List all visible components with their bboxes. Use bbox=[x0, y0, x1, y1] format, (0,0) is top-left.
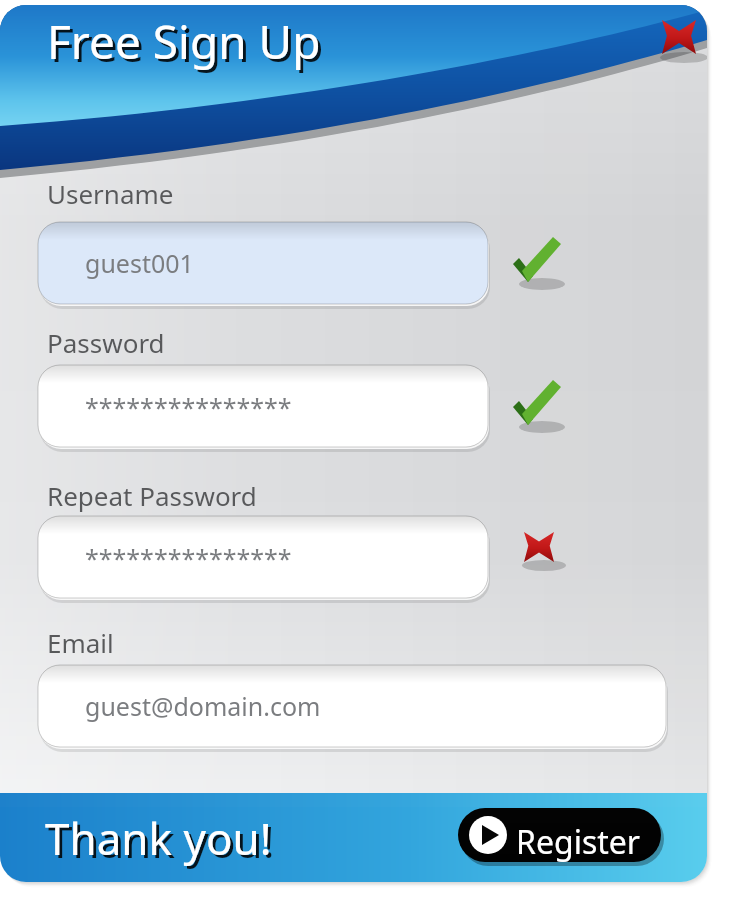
staticText: *************** bbox=[85, 541, 292, 575]
staticText: guest@domain.com bbox=[85, 689, 321, 723]
button[interactable] bbox=[38, 222, 488, 304]
staticText: Register bbox=[516, 820, 641, 864]
staticText: Free Sign Up bbox=[50, 13, 324, 76]
button[interactable] bbox=[38, 516, 488, 598]
staticText: Email bbox=[47, 625, 114, 660]
staticText: Thank you! bbox=[45, 808, 272, 868]
staticText: Username bbox=[47, 176, 174, 211]
staticText: Free Sign Up bbox=[47, 10, 321, 73]
staticText: Thank you! bbox=[48, 811, 275, 871]
button[interactable] bbox=[38, 665, 666, 747]
staticText: Password bbox=[47, 325, 165, 360]
staticText: guest001 bbox=[85, 246, 194, 280]
button[interactable]: Close bbox=[655, 12, 707, 64]
button[interactable] bbox=[458, 808, 661, 862]
button[interactable] bbox=[38, 365, 488, 447]
staticText: Repeat Password bbox=[47, 478, 257, 513]
staticText: *************** bbox=[85, 390, 292, 424]
